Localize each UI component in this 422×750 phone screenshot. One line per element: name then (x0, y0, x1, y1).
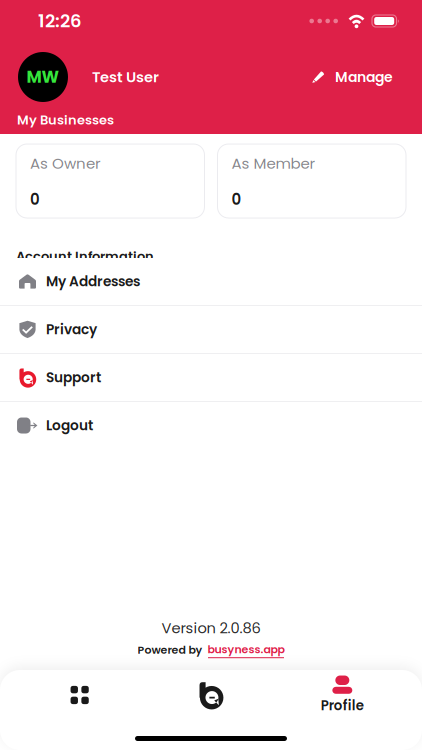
button[interactable]: As Member (217, 144, 406, 218)
staticText: 12:26 (38, 8, 82, 34)
staticText: My Businesses (17, 111, 114, 129)
staticText: Manage (335, 67, 393, 87)
staticText: 0 (231, 189, 241, 210)
staticText: As Owner (30, 153, 101, 174)
button[interactable]: Home (145, 673, 277, 717)
staticText: Logout (46, 416, 93, 435)
staticText: 0 (30, 189, 40, 210)
button[interactable]: Privacy (0, 306, 422, 353)
staticText: Support (46, 368, 101, 387)
button[interactable]: Logout (0, 402, 422, 449)
button[interactable]: Support (0, 354, 422, 401)
button[interactable]: My Addresses (0, 258, 422, 305)
staticText: MW (26, 65, 59, 89)
button[interactable]: As Owner (16, 144, 204, 218)
staticText: Account Information (16, 247, 154, 265)
staticText: Test User (92, 67, 159, 87)
button[interactable]: Dashboard (14, 673, 145, 717)
staticText: Privacy (46, 320, 97, 339)
staticText: busyness.app (207, 642, 284, 657)
staticText: Profile (321, 696, 364, 715)
button[interactable]: Manage (312, 61, 393, 93)
button[interactable]: Profile (277, 673, 408, 717)
staticText: As Member (231, 153, 315, 174)
button[interactable]: busyness.app (207, 642, 284, 658)
staticText: Version 2.0.86 (161, 618, 260, 638)
staticText: Powered by (137, 642, 202, 658)
staticText: My Addresses (46, 272, 140, 291)
